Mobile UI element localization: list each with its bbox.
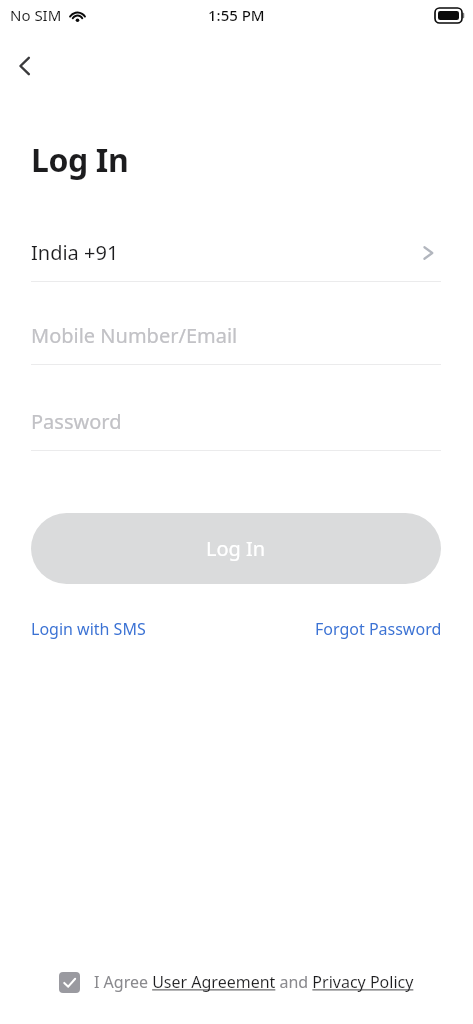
staticText: Log In [31,138,129,182]
button[interactable]: Password [0,392,473,450]
staticText: Password [31,408,122,435]
button[interactable]: Forgot Password [302,612,442,646]
staticText: Login with SMS [31,618,146,640]
button[interactable]: India +91 [0,224,473,281]
button[interactable]: I Agree User Agreement and Privacy Polic… [94,971,414,993]
staticText: Log In [206,535,266,562]
staticText: India +91 [31,239,119,266]
button[interactable]: I Agree [59,972,80,993]
staticText: Mobile Number/Email [31,322,238,349]
staticText: 1:55 PM [208,5,265,25]
staticText: Forgot Password [315,618,442,640]
staticText: No SIM [10,5,62,25]
staticText: I Agree User Agreement and Privacy Polic… [94,971,414,993]
button[interactable]: Mobile Number/Email [0,306,473,364]
button[interactable]: Login with SMS [31,612,146,646]
button[interactable]: Log In [31,513,441,584]
button[interactable]: Back [2,43,48,89]
